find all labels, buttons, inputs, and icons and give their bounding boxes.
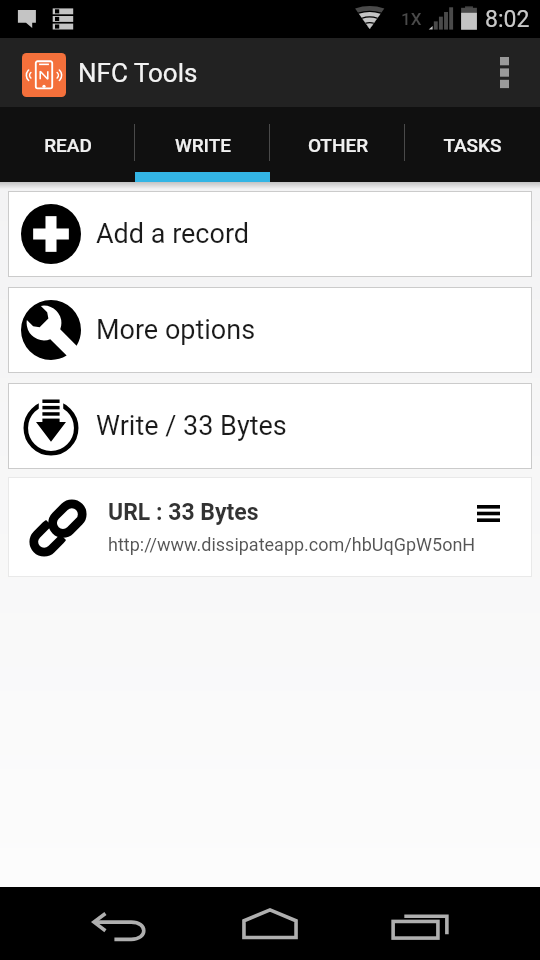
- button[interactable]: Home: [240, 887, 300, 960]
- button[interactable]: URL : 33 Bytes: [8, 477, 532, 577]
- staticText: TASKS: [443, 134, 502, 156]
- button[interactable]: WRITE: [135, 107, 270, 182]
- button[interactable]: TASKS: [405, 107, 540, 182]
- button[interactable]: Back: [90, 887, 150, 960]
- staticText: 8:02: [485, 6, 530, 33]
- button[interactable]: OTHER: [270, 107, 405, 182]
- button[interactable]: READ: [0, 107, 135, 182]
- staticText: OTHER: [308, 134, 368, 156]
- staticText: Add a record: [96, 218, 250, 250]
- staticText: More options: [96, 314, 256, 346]
- button[interactable]: More options: [8, 287, 532, 373]
- button[interactable]: Write / 33 Bytes: [8, 383, 532, 469]
- button[interactable]: Recents: [390, 887, 450, 960]
- staticText: 1X: [401, 9, 422, 29]
- staticText: WRITE: [175, 134, 231, 156]
- staticText: Write / 33 Bytes: [96, 410, 287, 442]
- staticText: URL : 33 Bytes: [108, 499, 259, 526]
- button[interactable]: Add a record: [8, 191, 532, 277]
- staticText: http://www.dissipateapp.com/hbUqGpW5onH: [108, 534, 476, 555]
- button[interactable]: More options: [476, 38, 532, 107]
- staticText: NFC Tools: [78, 58, 198, 88]
- staticText: READ: [44, 134, 92, 156]
- button[interactable]: Record menu: [464, 492, 512, 534]
